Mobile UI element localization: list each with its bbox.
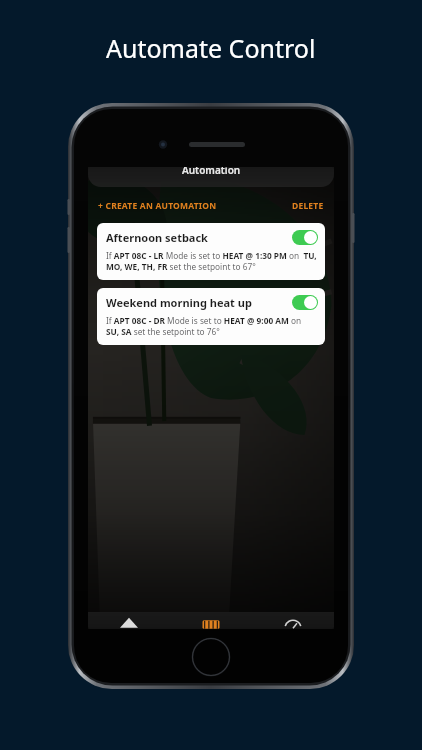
staticText: Weekend morning heat up <box>106 295 252 310</box>
staticText: Afternoon setback <box>106 230 208 245</box>
button[interactable]: + CREATE AN AUTOMATION <box>97 197 218 215</box>
staticText: + CREATE AN AUTOMATION <box>98 200 217 212</box>
staticText: If APT 08C - LR Mode is set to HEAT @ 1:… <box>106 250 318 272</box>
button[interactable]: Toggle automation <box>292 295 318 310</box>
staticText: Automate Control <box>106 31 316 65</box>
staticText: Automation <box>182 167 241 177</box>
staticText: DELETE <box>292 200 324 212</box>
staticText: If APT 08C - DR Mode is set to HEAT @ 9:… <box>106 315 318 337</box>
button[interactable]: Home <box>88 612 170 629</box>
button[interactable]: DELETE <box>291 197 325 215</box>
button[interactable]: Usage <box>252 612 334 629</box>
button[interactable]: Automation <box>170 612 252 629</box>
button[interactable]: Afternoon setback <box>97 223 325 280</box>
button[interactable]: Toggle automation <box>292 230 318 245</box>
button[interactable]: Weekend morning heat up <box>97 288 325 345</box>
